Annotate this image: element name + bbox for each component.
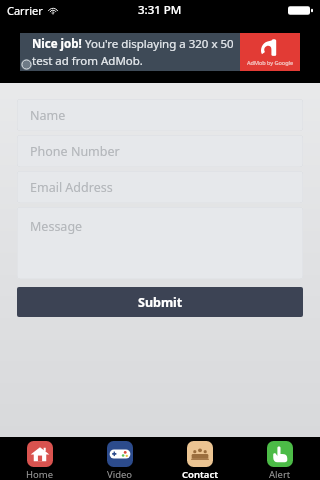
staticText: AdMob by Google — [247, 59, 294, 66]
staticText: test ad from AdMob. — [32, 53, 143, 69]
staticText: Phone Number — [30, 143, 120, 160]
staticText: Alert — [269, 468, 291, 480]
button[interactable]: Alert — [240, 437, 320, 480]
staticText: Message — [30, 218, 83, 235]
staticText: You're displaying a 320 x 50 — [82, 36, 234, 52]
staticText: Contact — [182, 468, 219, 480]
button[interactable]: Home — [0, 437, 80, 480]
staticText: Submit — [138, 294, 183, 311]
button[interactable]: Submit — [17, 287, 303, 317]
button[interactable]: Advertisement — [20, 33, 300, 71]
staticText: Name — [30, 107, 66, 124]
button[interactable]: Video — [80, 437, 160, 480]
button[interactable]: Phone Number — [17, 135, 303, 167]
staticText: Nice job! — [32, 36, 82, 52]
button[interactable]: Email Address — [17, 171, 303, 203]
staticText: Video — [107, 468, 133, 480]
button[interactable]: Message — [17, 207, 303, 279]
staticText: Email Address — [30, 179, 113, 196]
staticText: 3:31 PM — [138, 2, 182, 18]
staticText: Home — [26, 468, 54, 480]
button[interactable]: Name — [17, 99, 303, 131]
button[interactable]: Contact — [160, 437, 240, 480]
staticText: Carrier — [7, 3, 43, 18]
